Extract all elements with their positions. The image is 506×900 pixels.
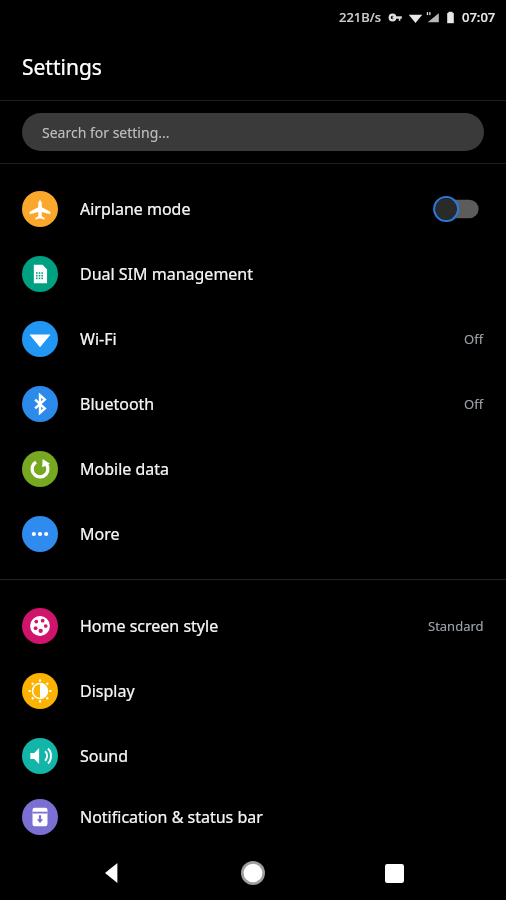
staticText: Standard xyxy=(428,617,484,635)
staticText: Airplane mode xyxy=(80,198,191,220)
button[interactable]: Home xyxy=(225,846,281,900)
button[interactable]: Dual SIM management xyxy=(0,241,506,306)
staticText: Notification & status bar xyxy=(80,806,263,828)
button[interactable]: Recent apps xyxy=(366,846,422,900)
staticText: Display xyxy=(80,680,135,702)
staticText: 07:07 xyxy=(462,8,496,26)
button[interactable]: Mobile data xyxy=(0,436,506,501)
button[interactable]: Wi-Fi xyxy=(0,306,506,371)
staticText: 221B/s xyxy=(339,8,382,26)
staticText: Home screen style xyxy=(80,615,219,637)
button[interactable]: Airplane mode toggle xyxy=(430,194,484,224)
button[interactable]: Back xyxy=(85,846,141,900)
staticText: Settings xyxy=(22,53,102,82)
button[interactable]: Home screen style xyxy=(0,593,506,658)
button[interactable]: Sound xyxy=(0,723,506,788)
button[interactable]: Notification & status bar xyxy=(0,788,506,846)
staticText: Mobile data xyxy=(80,458,170,480)
button[interactable]: Display xyxy=(0,658,506,723)
button[interactable]: Bluetooth xyxy=(0,371,506,436)
button[interactable]: Search for setting... xyxy=(22,113,484,151)
button[interactable]: More xyxy=(0,501,506,566)
staticText: Off xyxy=(464,395,484,413)
staticText: More xyxy=(80,523,120,545)
staticText: Bluetooth xyxy=(80,393,155,415)
staticText: Wi-Fi xyxy=(80,328,117,350)
staticText: Search for setting... xyxy=(42,123,170,142)
button[interactable]: Airplane mode xyxy=(0,176,506,241)
staticText: Dual SIM management xyxy=(80,263,254,285)
staticText: Sound xyxy=(80,745,129,767)
staticText: Off xyxy=(464,330,484,348)
